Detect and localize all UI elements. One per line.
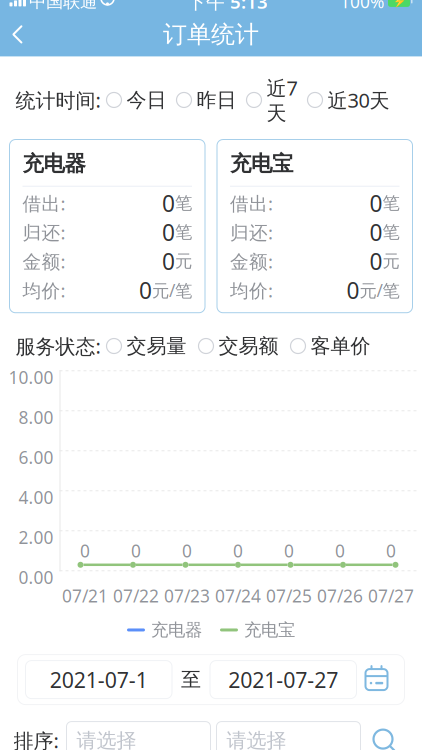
staticText: 07/23 bbox=[164, 584, 210, 607]
staticText: 0 bbox=[80, 539, 90, 562]
staticText: 归还: bbox=[230, 220, 273, 245]
staticText: 0 bbox=[335, 539, 345, 562]
staticText: 中国联通 bbox=[29, 0, 97, 12]
staticText: 近30天 bbox=[327, 87, 389, 113]
staticText: 充电宝 bbox=[230, 150, 293, 177]
staticText: 交易额 bbox=[218, 334, 278, 358]
button[interactable]: 交易额 bbox=[198, 334, 278, 358]
staticText: 0 bbox=[369, 188, 382, 218]
staticText: 07/22 bbox=[113, 584, 159, 607]
staticText: 07/25 bbox=[266, 584, 312, 607]
staticText: 0 bbox=[162, 188, 175, 218]
staticText: 金额: bbox=[22, 249, 65, 274]
staticText: 至 bbox=[181, 667, 201, 692]
staticText: 借出: bbox=[230, 191, 273, 216]
button[interactable]: 今日 bbox=[106, 88, 166, 112]
staticText: 交易量 bbox=[126, 334, 186, 358]
button[interactable]: 搜索 bbox=[360, 719, 408, 750]
staticText: 近7天 bbox=[266, 74, 297, 125]
staticText: 0 bbox=[369, 217, 382, 247]
staticText: 客单价 bbox=[310, 334, 370, 358]
staticText: 07/21 bbox=[62, 584, 108, 607]
staticText: ⚡ bbox=[392, 0, 405, 7]
staticText: 请选择 bbox=[76, 728, 136, 750]
staticText: 笔 bbox=[175, 222, 192, 243]
staticText: 0.00 bbox=[18, 566, 53, 589]
staticText: 均价: bbox=[230, 278, 273, 303]
staticText: 元 bbox=[175, 251, 192, 272]
staticText: 借出: bbox=[22, 191, 65, 216]
staticText: 充电器 bbox=[151, 619, 202, 641]
staticText: 07/26 bbox=[317, 584, 363, 607]
button[interactable]: 近7天 bbox=[246, 74, 297, 125]
staticText: 元/笔 bbox=[152, 279, 192, 302]
staticText: 金额: bbox=[230, 249, 273, 274]
staticText: 07/24 bbox=[215, 584, 261, 607]
button[interactable]: 2021-07-27 bbox=[210, 661, 356, 699]
staticText: 2.00 bbox=[18, 526, 53, 549]
staticText: 服务状态: bbox=[15, 333, 100, 359]
staticText: 0 bbox=[284, 539, 294, 562]
staticText: 0 bbox=[139, 275, 152, 305]
staticText: 0 bbox=[162, 246, 175, 276]
staticText: 元/笔 bbox=[359, 279, 399, 302]
button[interactable]: 客单价 bbox=[290, 334, 370, 358]
button[interactable]: 交易量 bbox=[106, 334, 186, 358]
staticText: 07/27 bbox=[368, 584, 414, 607]
staticText: 6.00 bbox=[18, 446, 53, 469]
staticText: 10.00 bbox=[8, 366, 53, 389]
staticText: 0 bbox=[182, 539, 192, 562]
staticText: 2021-07-1 bbox=[50, 665, 148, 694]
button[interactable]: 近30天 bbox=[307, 87, 389, 113]
staticText: 笔 bbox=[382, 193, 399, 214]
staticText: 下午 5:13 bbox=[187, 0, 268, 14]
staticText: 0 bbox=[162, 217, 175, 247]
button[interactable]: 返回 bbox=[0, 12, 39, 56]
staticText: 笔 bbox=[382, 222, 399, 243]
staticText: 0 bbox=[369, 246, 382, 276]
button[interactable]: 选择日期 bbox=[356, 660, 396, 700]
staticText: 订单统计 bbox=[163, 20, 259, 49]
button[interactable]: 昨日 bbox=[176, 88, 236, 112]
staticText: 8.00 bbox=[18, 406, 53, 429]
staticText: 归还: bbox=[22, 220, 65, 245]
staticText: 2021-07-27 bbox=[228, 665, 338, 694]
staticText: 0 bbox=[386, 539, 396, 562]
staticText: 充电宝 bbox=[244, 619, 295, 641]
staticText: 请选择 bbox=[226, 728, 286, 750]
staticText: 今日 bbox=[126, 88, 166, 112]
button[interactable]: 2021-07-1 bbox=[25, 661, 172, 699]
staticText: 笔 bbox=[175, 193, 192, 214]
staticText: 均价: bbox=[22, 278, 65, 303]
staticText: 昨日 bbox=[196, 88, 236, 112]
staticText: 0 bbox=[131, 539, 141, 562]
staticText: 排序: bbox=[13, 727, 58, 750]
staticText: 充电器 bbox=[22, 150, 85, 177]
button[interactable]: 请选择 bbox=[66, 722, 210, 750]
button[interactable]: 请选择 bbox=[216, 722, 360, 750]
staticText: 统计时间: bbox=[15, 87, 100, 113]
staticText: 4.00 bbox=[18, 486, 53, 509]
staticText: 100% bbox=[340, 0, 384, 13]
staticText: 0 bbox=[233, 539, 243, 562]
staticText: 元 bbox=[382, 251, 399, 272]
staticText: 0 bbox=[346, 275, 359, 305]
